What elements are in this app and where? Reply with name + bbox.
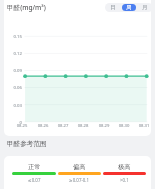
staticText: 日 — [110, 4, 116, 11]
staticText: 0.03 — [13, 102, 22, 108]
button[interactable]: 日 — [106, 4, 120, 11]
staticText: 正常 — [28, 163, 41, 171]
button[interactable]: 正常 — [11, 163, 57, 183]
button[interactable]: 月 — [138, 4, 151, 11]
staticText: 甲醛参考范围 — [7, 140, 47, 148]
button[interactable]: 极高 — [102, 163, 147, 183]
staticText: 08.25 — [13, 123, 31, 129]
staticText: 08.29 — [95, 123, 113, 129]
staticText: ≤0.07 — [28, 177, 41, 183]
staticText: 08.31 — [135, 123, 151, 129]
staticText: 甲醛(mg/m³) — [7, 3, 46, 12]
staticText: 0.12 — [13, 50, 22, 56]
staticText: 0.15 — [13, 33, 22, 39]
staticText: 极高 — [118, 163, 131, 171]
staticText: 08.26 — [34, 123, 52, 129]
button[interactable]: 周 — [122, 4, 136, 11]
staticText: ≥0.07-0.1 — [69, 177, 90, 183]
staticText: 08.27 — [54, 123, 72, 129]
staticText: 月 — [142, 4, 148, 11]
staticText: 0 — [19, 119, 22, 125]
staticText: 08.28 — [74, 123, 92, 129]
staticText: 0.09 — [13, 67, 22, 73]
staticText: 08.30 — [115, 123, 133, 129]
staticText: 0.06 — [13, 84, 22, 90]
button[interactable]: 偏高 — [57, 163, 102, 183]
staticText: >0.1 — [120, 177, 129, 183]
staticText: 偏高 — [73, 163, 86, 171]
staticText: 周 — [126, 4, 132, 11]
